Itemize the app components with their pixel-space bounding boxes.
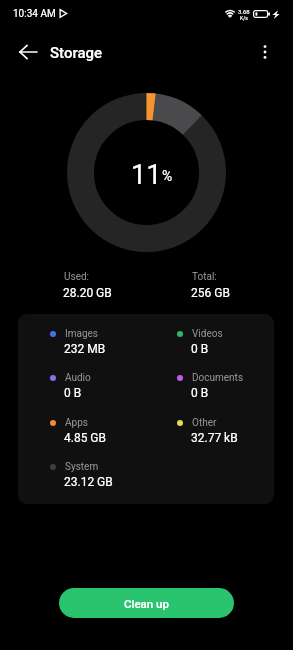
staticText: %	[162, 168, 173, 184]
staticText: 256 GB	[191, 286, 230, 300]
staticText: Apps	[65, 417, 88, 429]
button[interactable]: More options	[243, 30, 287, 74]
staticText: 0 B	[191, 386, 209, 400]
staticText: Audio	[65, 372, 91, 384]
staticText: 32.77 kB	[191, 431, 238, 445]
staticText: Other	[192, 417, 217, 429]
staticText: Used:	[64, 271, 90, 283]
staticText: Videos	[192, 328, 223, 340]
staticText: 23.12 GB	[64, 475, 113, 489]
staticText: 3.68	[238, 8, 250, 15]
button[interactable]: Clean up	[59, 588, 234, 618]
staticText: 232 MB	[64, 342, 106, 356]
staticText: System	[65, 461, 99, 473]
staticText: 4.85 GB	[64, 431, 107, 445]
staticText: 11	[131, 159, 162, 191]
staticText: 0 B	[64, 386, 82, 400]
staticText: K/s	[240, 15, 248, 21]
staticText: Total:	[192, 271, 217, 283]
staticText: Images	[65, 328, 99, 340]
staticText: Clean up	[124, 597, 169, 610]
button[interactable]: Back	[6, 30, 50, 74]
staticText: 28.20 GB	[63, 286, 112, 300]
staticText: Documents	[192, 372, 244, 384]
staticText: Storage	[50, 44, 103, 62]
staticText: 10:34 AM	[13, 8, 56, 20]
staticText: 0 B	[191, 342, 209, 356]
